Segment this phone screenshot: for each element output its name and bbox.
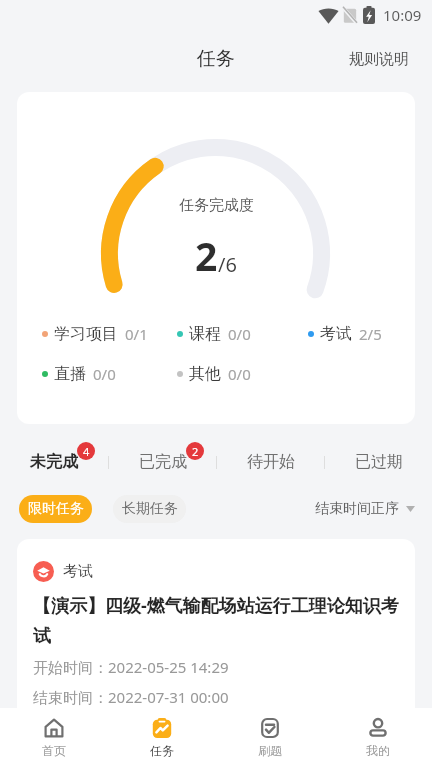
staticText: 长期任务 [122,500,178,518]
staticText: 学习项目 [54,324,118,344]
button[interactable]: 已完成 [109,434,216,490]
button[interactable]: 首页 [0,708,108,768]
staticText: 开始时间：2022-05-25 14:29 [33,657,229,677]
staticText: 已完成 [139,452,187,472]
staticText: 0/0 [228,324,251,344]
button[interactable]: 长期任务 [113,495,186,523]
staticText: 待开始 [247,452,295,472]
staticText: 考试 [320,324,352,344]
staticText: 考试 [63,562,93,581]
staticText: 刷题 [258,743,282,758]
button[interactable]: 结束时间正序 [315,494,415,524]
staticText: 规则说明 [349,50,409,69]
staticText: 未完成 [30,452,78,472]
staticText: 任务完成度 [179,196,254,215]
button[interactable]: 规则说明 [332,40,432,79]
staticText: 任务 [150,743,174,758]
staticText: 【演示】四级-燃气输配场站运行工理论知识考试 [33,593,399,647]
button[interactable]: 未完成 [0,434,108,490]
button[interactable]: 考试 [17,539,415,725]
button[interactable]: 我的 [324,708,432,768]
button[interactable]: 任务 [108,708,216,768]
staticText: 2 [192,444,199,459]
button[interactable]: 待开始 [217,434,324,490]
staticText: 限时任务 [28,500,84,518]
staticText: 任务 [197,47,235,71]
staticText: 0/0 [228,364,251,384]
staticText: 其他 [189,364,221,384]
staticText: 我的 [366,743,390,758]
staticText: 2 [195,229,218,282]
staticText: 2/5 [359,324,382,344]
staticText: 0/0 [93,364,116,384]
staticText: 10:09 [383,5,422,25]
button[interactable]: 限时任务 [19,495,92,523]
staticText: 已过期 [355,452,403,472]
button[interactable]: 刷题 [216,708,324,768]
staticText: 结束时间：2022-07-31 00:00 [33,687,229,707]
staticText: 直播 [54,364,86,384]
staticText: 4 [83,444,90,459]
staticText: /6 [218,251,237,278]
staticText: 0/1 [125,324,148,344]
button[interactable]: 已过期 [325,434,432,490]
staticText: 首页 [42,743,66,758]
staticText: 结束时间正序 [315,500,399,518]
staticText: 课程 [189,324,221,344]
